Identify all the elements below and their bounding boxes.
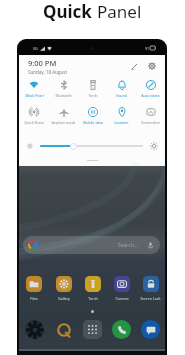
staticText: Panel (97, 0, 142, 22)
button[interactable]: Gallery (49, 276, 78, 301)
staticText: Quick (43, 0, 97, 22)
button[interactable]: Camera (107, 276, 136, 301)
button[interactable]: Auto rotate (136, 77, 165, 104)
button[interactable]: Phone (107, 319, 136, 339)
staticText: Sunday, 18 August (28, 69, 68, 75)
button[interactable]: Quick Share (19, 104, 49, 131)
button[interactable]: Assistant (49, 319, 78, 339)
button[interactable]: Settings (19, 319, 49, 339)
staticText: Screen Lock (140, 296, 161, 301)
staticText: Gallery (58, 296, 70, 301)
button[interactable]: Block Pearl (19, 77, 49, 104)
button[interactable]: Files (19, 276, 49, 301)
staticText: Camera (115, 296, 129, 301)
button[interactable]: Sound (107, 77, 136, 104)
button[interactable]: Screen Lock (136, 276, 165, 301)
button[interactable]: Torch (78, 276, 107, 301)
staticText: Airplane mode (51, 120, 76, 125)
staticText: Torch (88, 296, 98, 301)
button[interactable]: Airplane mode (49, 104, 78, 131)
staticText: Quick Share (24, 120, 44, 125)
button[interactable]: Torch (78, 77, 107, 104)
button[interactable]: Bluetooth (49, 77, 78, 104)
button[interactable]: Mobile data (78, 104, 107, 131)
button[interactable]: Search... (23, 236, 160, 254)
button[interactable]: Settings (146, 60, 158, 72)
staticText: Mobile data (83, 120, 103, 125)
staticText: Block Pearl (25, 93, 44, 98)
staticText: Location (114, 120, 129, 125)
staticText: Torch (88, 93, 98, 98)
staticText: 9:00 PM (28, 58, 57, 68)
button[interactable]: Apps (78, 319, 107, 339)
staticText: Bluetooth (55, 93, 72, 98)
button[interactable]: Screenshot (136, 104, 165, 131)
staticText: 91 (145, 46, 149, 51)
staticText: 5G (33, 46, 38, 51)
staticText: Sound (116, 93, 127, 98)
button[interactable]: Messages (136, 319, 165, 339)
staticText: Screenshot (141, 120, 160, 125)
staticText: Search... (118, 242, 138, 249)
staticText: Auto rotate (141, 93, 160, 98)
staticText: Files (30, 296, 38, 301)
button[interactable]: Location (107, 104, 136, 131)
button[interactable]: Edit (128, 60, 140, 72)
